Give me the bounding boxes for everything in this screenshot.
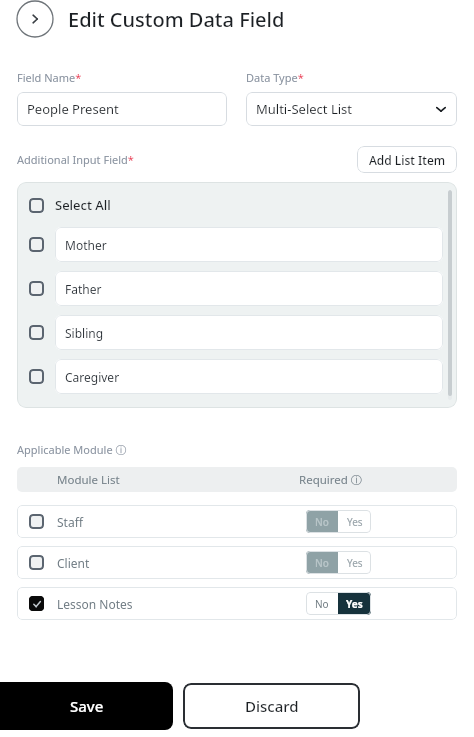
button[interactable]: Father <box>55 271 443 306</box>
staticText: Additional Input Field* <box>17 152 134 167</box>
staticText: Module List <box>57 472 120 488</box>
button[interactable]: Add List Item <box>357 146 457 173</box>
staticText: Save <box>70 696 104 716</box>
button[interactable]: People Present <box>17 92 227 126</box>
staticText: Field Name* <box>17 70 82 85</box>
button[interactable]: Multi-Select List <box>246 92 457 126</box>
staticText: Yes <box>347 556 363 570</box>
staticText: No <box>315 515 329 529</box>
staticText: No <box>315 556 329 570</box>
button[interactable]: No <box>306 592 371 615</box>
staticText: Father <box>65 281 102 297</box>
staticText: Discard <box>245 696 299 716</box>
staticText: People Present <box>27 100 119 118</box>
button[interactable] <box>29 325 44 340</box>
button[interactable] <box>29 281 44 296</box>
button[interactable]: No <box>306 551 371 574</box>
staticText: Sibling <box>65 325 104 341</box>
staticText: Select All <box>55 196 111 214</box>
staticText: Mother <box>65 237 107 253</box>
button[interactable] <box>29 369 44 384</box>
button[interactable]: Discard <box>183 683 360 729</box>
staticText: No <box>315 597 329 611</box>
button[interactable]: Sibling <box>55 315 443 350</box>
button[interactable]: Select All <box>55 196 111 214</box>
button[interactable]: Lesson Notes <box>17 587 457 620</box>
staticText: Lesson Notes <box>57 596 133 612</box>
button[interactable]: Client <box>17 546 457 579</box>
staticText: Required ⓘ <box>299 472 363 488</box>
button[interactable] <box>29 514 44 529</box>
button[interactable] <box>29 198 44 213</box>
button[interactable]: Save <box>0 682 173 730</box>
button[interactable] <box>29 596 44 611</box>
button[interactable]: No <box>306 510 371 533</box>
staticText: Applicable Module ⓘ <box>17 442 127 457</box>
staticText: Yes <box>346 597 363 611</box>
staticText: Yes <box>347 515 363 529</box>
staticText: Edit Custom Data Field <box>68 6 285 33</box>
button[interactable] <box>29 555 44 570</box>
button[interactable]: Mother <box>55 227 443 262</box>
staticText: Staff <box>57 514 83 530</box>
staticText: Client <box>57 555 90 571</box>
button[interactable]: Back <box>16 0 54 38</box>
staticText: Add List Item <box>369 152 446 168</box>
button[interactable]: Caregiver <box>55 359 443 394</box>
staticText: Data Type* <box>246 70 304 85</box>
staticText: Caregiver <box>65 369 120 385</box>
button[interactable]: Staff <box>17 505 457 538</box>
button[interactable] <box>29 237 44 252</box>
staticText: Multi-Select List <box>256 100 352 118</box>
